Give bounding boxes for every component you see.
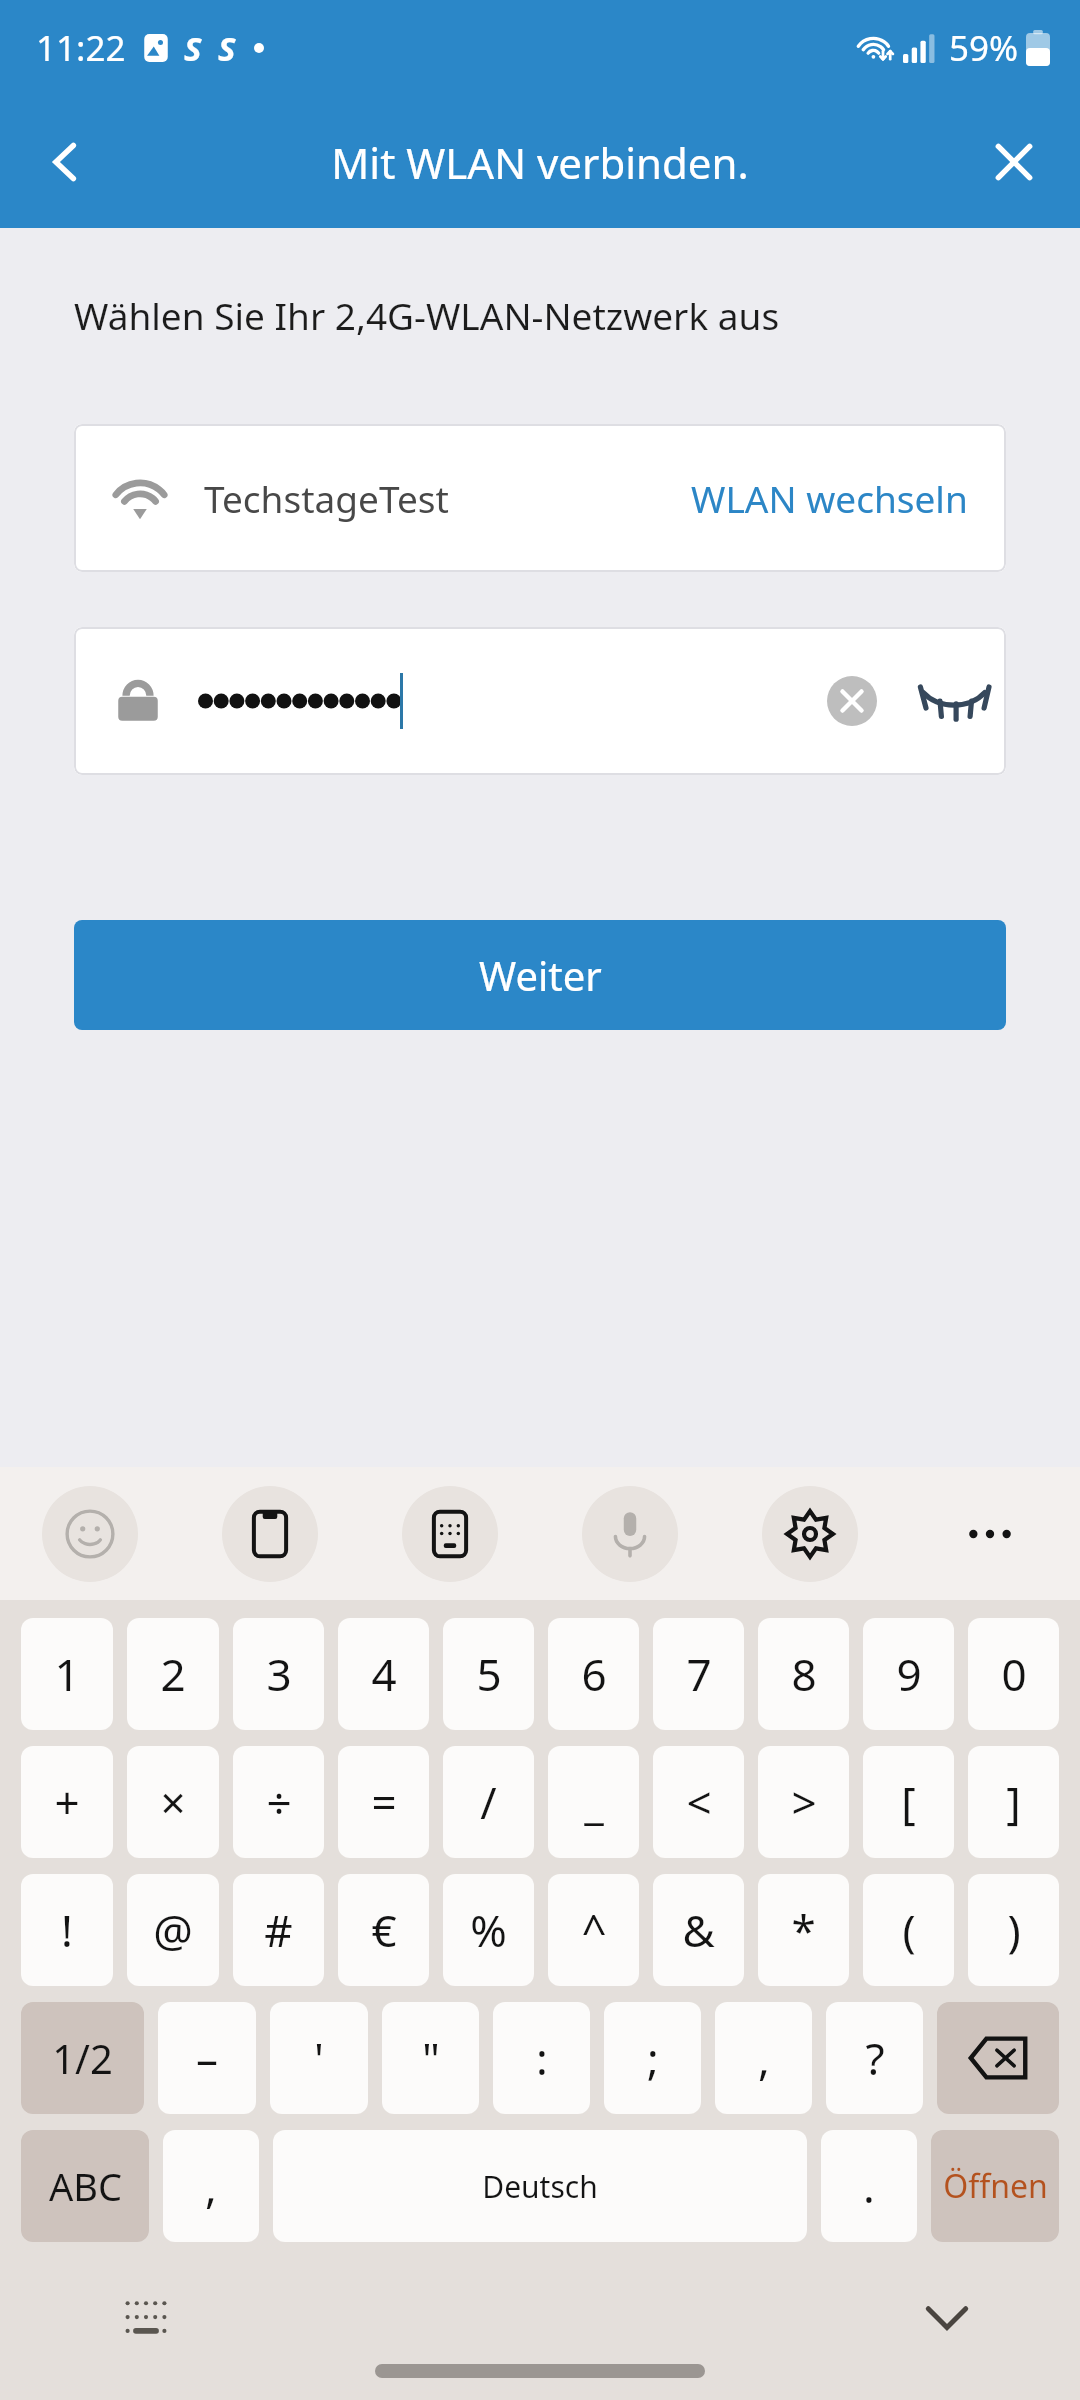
staticText: € — [371, 1900, 397, 1960]
button[interactable]: Deutsch — [273, 2130, 807, 2242]
button[interactable]: , — [163, 2130, 259, 2242]
staticText: ^ — [581, 1900, 607, 1960]
staticText: ; — [647, 2028, 659, 2088]
staticText: . — [863, 2156, 875, 2216]
button[interactable]: > — [758, 1746, 849, 1858]
button[interactable]: , — [715, 2002, 812, 2114]
button[interactable]: & — [653, 1874, 744, 1986]
staticText: 9 — [896, 1644, 922, 1704]
staticText: + — [54, 1772, 80, 1832]
staticText: S — [184, 26, 202, 71]
button[interactable]: Schließen — [966, 114, 1062, 210]
staticText: 11:22 — [36, 24, 126, 72]
button[interactable]: ( — [863, 1874, 954, 1986]
button[interactable]: + — [21, 1746, 113, 1858]
button[interactable]: Tastaturlayout — [360, 1467, 540, 1600]
button[interactable]: Weiter — [74, 920, 1006, 1030]
button[interactable]: @ — [127, 1874, 219, 1986]
staticText: @ — [153, 1900, 193, 1960]
staticText: TechstageTest — [204, 473, 449, 523]
button[interactable]: 2 — [127, 1618, 219, 1730]
button[interactable]: ÷ — [233, 1746, 324, 1858]
staticText: " — [422, 2028, 440, 2088]
staticText: _ — [584, 1772, 604, 1832]
button[interactable]: 3 — [233, 1618, 324, 1730]
button[interactable]: Mehr — [900, 1467, 1080, 1600]
button[interactable]: # — [233, 1874, 324, 1986]
button[interactable]: Eingabe löschen — [812, 661, 892, 741]
button[interactable]: TechstageTest — [74, 424, 1006, 572]
staticText: / — [480, 1772, 497, 1832]
button[interactable]: – — [158, 2002, 256, 2114]
button[interactable]: ! — [21, 1874, 113, 1986]
button[interactable]: Spracheingabe — [540, 1467, 720, 1600]
staticText: # — [264, 1900, 293, 1960]
button[interactable]: ; — [604, 2002, 701, 2114]
button[interactable]: " — [382, 2002, 479, 2114]
staticText: [ — [901, 1772, 916, 1832]
button[interactable]: Löschen — [937, 2002, 1059, 2114]
button[interactable]: ? — [826, 2002, 923, 2114]
button[interactable]: ) — [968, 1874, 1059, 1986]
staticText: 5 — [476, 1644, 502, 1704]
button[interactable]: [ — [863, 1746, 954, 1858]
staticText: Öffnen — [943, 2164, 1048, 2208]
staticText: : — [536, 2028, 548, 2088]
staticText: ABC — [49, 2160, 122, 2212]
button[interactable]: 8 — [758, 1618, 849, 1730]
staticText: , — [758, 2028, 770, 2088]
staticText: 7 — [686, 1644, 712, 1704]
button[interactable]: _ — [548, 1746, 639, 1858]
staticText: , — [205, 2156, 217, 2216]
button[interactable]: 7 — [653, 1618, 744, 1730]
button[interactable]: € — [338, 1874, 429, 1986]
staticText: ) — [1007, 1900, 1021, 1960]
button[interactable]: . — [821, 2130, 917, 2242]
button[interactable]: * — [758, 1874, 849, 1986]
button[interactable]: ' — [270, 2002, 368, 2114]
button[interactable]: 6 — [548, 1618, 639, 1730]
button[interactable]: 4 — [338, 1618, 429, 1730]
staticText: S — [218, 26, 236, 71]
staticText: Deutsch — [482, 2166, 598, 2207]
button[interactable]: < — [653, 1746, 744, 1858]
staticText: 3 — [266, 1644, 292, 1704]
button[interactable]: Einstellungen — [720, 1467, 900, 1600]
button[interactable]: 5 — [443, 1618, 534, 1730]
staticText: * — [791, 1900, 816, 1960]
button[interactable]: 0 — [968, 1618, 1059, 1730]
staticText: WLAN wechseln — [691, 473, 968, 523]
staticText: Weiter — [479, 948, 602, 1002]
button[interactable]: ABC — [21, 2130, 149, 2242]
button[interactable]: 9 — [863, 1618, 954, 1730]
staticText: Mit WLAN verbinden. — [331, 134, 749, 191]
button[interactable]: × — [127, 1746, 219, 1858]
button[interactable]: 1/2 — [21, 2002, 144, 2114]
staticText: 4 — [371, 1644, 397, 1704]
button[interactable]: Zwischenablage — [180, 1467, 360, 1600]
button[interactable]: Zurück — [18, 114, 114, 210]
button[interactable]: ] — [968, 1746, 1059, 1858]
staticText: – — [196, 2028, 218, 2088]
staticText: = — [371, 1772, 397, 1832]
button[interactable]: Emoji — [0, 1467, 180, 1600]
button[interactable]: ^ — [548, 1874, 639, 1986]
button[interactable]: Tastatur — [110, 2282, 182, 2354]
staticText: 59% — [949, 24, 1019, 72]
staticText: Wählen Sie Ihr 2,4G-WLAN-Netzwerk aus — [74, 290, 780, 340]
button[interactable]: % — [443, 1874, 534, 1986]
staticText: > — [791, 1772, 817, 1832]
staticText: 2 — [160, 1644, 186, 1704]
button[interactable]: Öffnen — [931, 2130, 1059, 2242]
button[interactable]: / — [443, 1746, 534, 1858]
staticText: ] — [1006, 1772, 1021, 1832]
staticText: ' — [314, 2028, 324, 2088]
button[interactable]: = — [338, 1746, 429, 1858]
staticText: 6 — [581, 1644, 607, 1704]
button[interactable]: 1 — [21, 1618, 113, 1730]
button[interactable]: Passwort anzeigen — [910, 657, 998, 745]
button[interactable]: : — [493, 2002, 590, 2114]
button[interactable]: Tastatur schließen — [904, 2274, 990, 2360]
button[interactable]: Eingabe löschen — [74, 627, 1006, 775]
staticText: ÷ — [266, 1772, 292, 1832]
